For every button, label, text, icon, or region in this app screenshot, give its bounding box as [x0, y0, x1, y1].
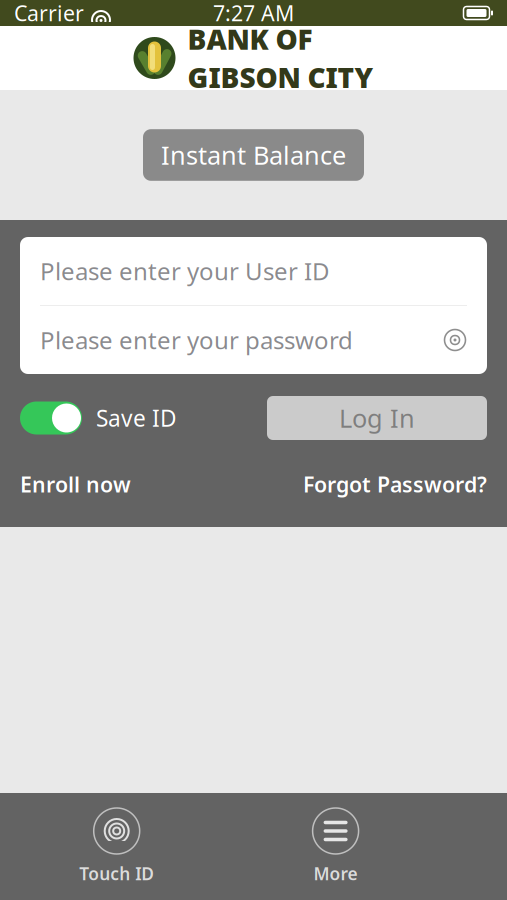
staticText: 7:27 AM: [213, 0, 294, 27]
staticText: Touch ID: [79, 862, 154, 885]
staticText: More: [314, 862, 358, 885]
button[interactable]: Instant Balance: [143, 129, 364, 181]
staticText: Forgot Password?: [303, 470, 487, 498]
staticText: GIBSON CITY: [187, 58, 373, 96]
staticText: Please enter your User ID: [40, 255, 330, 287]
button[interactable]: Log In: [267, 396, 487, 440]
staticText: BANK OF: [187, 20, 312, 57]
button[interactable]: More: [303, 804, 369, 889]
staticText: Save ID: [96, 403, 177, 433]
staticText: Please enter your password: [40, 324, 353, 356]
button[interactable]: Touch ID: [69, 804, 164, 889]
staticText: Enroll now: [20, 470, 131, 498]
button[interactable]: Please enter your password: [20, 306, 487, 374]
button[interactable]: Enroll now: [20, 470, 131, 498]
staticText: Carrier: [14, 0, 84, 27]
button[interactable]: Forgot Password?: [303, 470, 487, 498]
button[interactable]: Please enter your User ID: [20, 237, 487, 305]
button[interactable]: Save ID: [20, 401, 177, 434]
staticText: Instant Balance: [161, 138, 346, 172]
staticText: Log In: [339, 401, 415, 435]
